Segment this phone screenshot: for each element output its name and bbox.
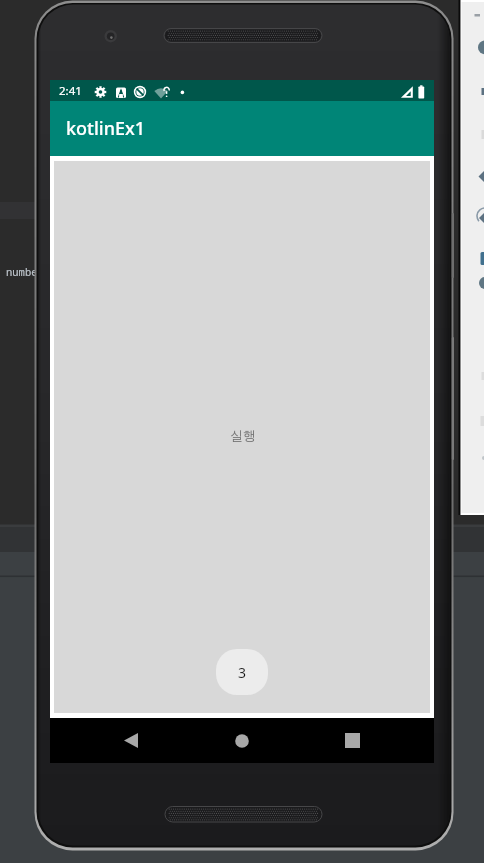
staticText: 2:41 bbox=[59, 83, 82, 99]
button[interactable]: Emulator controls bbox=[458, 0, 484, 515]
staticText: 3 bbox=[238, 663, 247, 682]
staticText: numbe bbox=[6, 265, 38, 279]
button[interactable]: Recent apps bbox=[329, 718, 375, 763]
staticText: 실행 bbox=[230, 427, 256, 443]
button[interactable]: 3 bbox=[216, 649, 268, 695]
button[interactable]: Back bbox=[108, 718, 154, 763]
staticText: kotlinEx1 bbox=[66, 116, 146, 141]
button[interactable]: Home bbox=[219, 718, 265, 763]
